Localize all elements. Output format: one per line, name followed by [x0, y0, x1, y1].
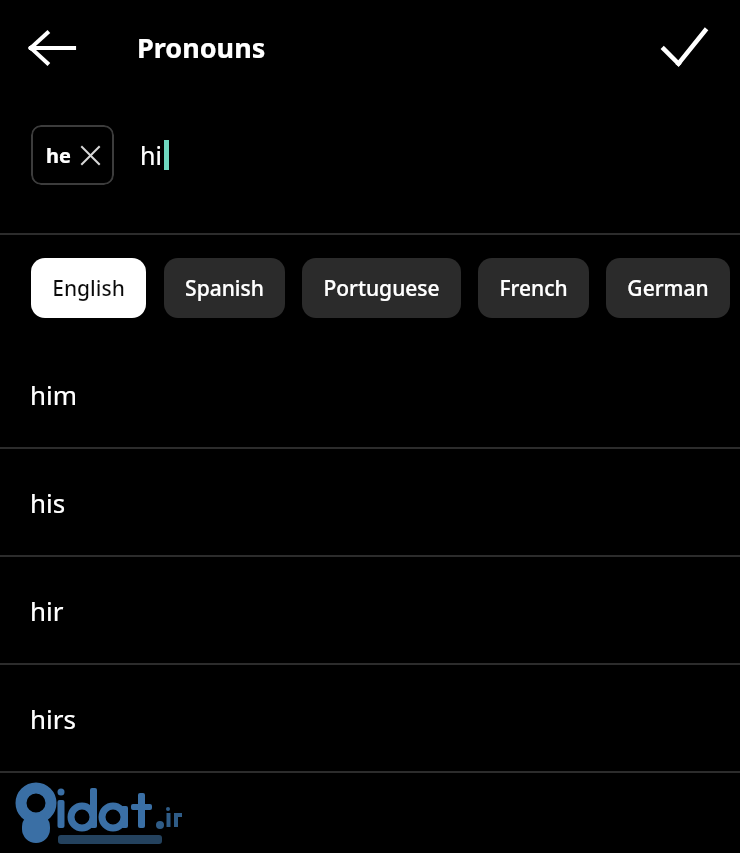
- button[interactable]: his: [0, 449, 740, 555]
- button[interactable]: German: [606, 258, 730, 318]
- button[interactable]: Portuguese: [302, 258, 461, 318]
- button[interactable]: Spanish: [164, 258, 285, 318]
- button[interactable]: French: [478, 258, 589, 318]
- staticText: him: [30, 377, 78, 412]
- staticText: his: [30, 485, 66, 520]
- button[interactable]: hirs: [0, 665, 740, 771]
- button[interactable]: hir: [0, 557, 740, 663]
- staticText: hirs: [30, 701, 76, 736]
- staticText: hi: [140, 138, 162, 172]
- staticText: Pronouns: [137, 29, 266, 66]
- staticText: Spanish: [185, 274, 264, 303]
- staticText: he: [46, 142, 71, 169]
- staticText: German: [627, 274, 709, 303]
- staticText: French: [499, 274, 568, 303]
- staticText: English: [52, 274, 125, 303]
- button[interactable]: Back: [14, 10, 90, 86]
- button[interactable]: him: [0, 341, 740, 447]
- button[interactable]: he: [31, 125, 114, 185]
- staticText: hir: [30, 593, 64, 628]
- staticText: Portuguese: [323, 274, 440, 303]
- button[interactable]: Done: [646, 10, 722, 86]
- button[interactable]: English: [31, 258, 146, 318]
